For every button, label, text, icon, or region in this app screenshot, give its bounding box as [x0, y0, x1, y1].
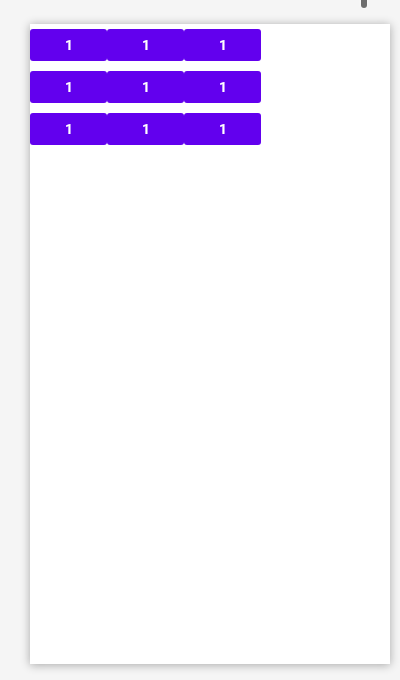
- staticText: 1: [219, 121, 227, 137]
- button[interactable]: 1: [30, 71, 107, 103]
- staticText: 1: [219, 79, 227, 95]
- button[interactable]: 1: [184, 113, 261, 145]
- staticText: 1: [65, 121, 73, 137]
- staticText: 1: [65, 37, 73, 53]
- staticText: 1: [142, 79, 150, 95]
- button[interactable]: 1: [184, 71, 261, 103]
- button[interactable]: 1: [107, 113, 184, 145]
- staticText: 1: [142, 121, 150, 137]
- staticText: 1: [219, 37, 227, 53]
- button[interactable]: 1: [184, 29, 261, 61]
- button[interactable]: Scroll: [358, 0, 370, 12]
- button[interactable]: 1: [107, 71, 184, 103]
- button[interactable]: 1: [30, 29, 107, 61]
- staticText: 1: [142, 37, 150, 53]
- button[interactable]: 1: [30, 113, 107, 145]
- button[interactable]: 1: [107, 29, 184, 61]
- staticText: 1: [65, 79, 73, 95]
